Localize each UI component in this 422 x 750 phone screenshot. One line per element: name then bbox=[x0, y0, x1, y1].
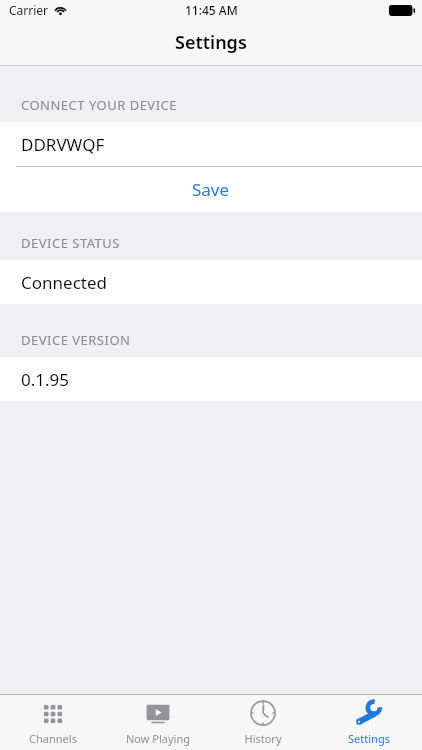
staticText: DEVICE VERSION bbox=[21, 331, 131, 349]
button[interactable]: Channels bbox=[0, 695, 105, 750]
staticText: Now Playing bbox=[126, 731, 190, 746]
staticText: Settings bbox=[175, 30, 247, 55]
staticText: Connected bbox=[21, 271, 107, 294]
staticText: Save bbox=[192, 178, 230, 201]
button[interactable]: Settings bbox=[316, 695, 422, 750]
staticText: Settings bbox=[348, 731, 390, 746]
staticText: CONNECT YOUR DEVICE bbox=[21, 96, 178, 114]
staticText: Channels bbox=[29, 731, 77, 746]
button[interactable]: DDRVWQF bbox=[0, 122, 422, 166]
staticText: History bbox=[244, 731, 282, 746]
button[interactable]: Connected bbox=[0, 260, 422, 304]
staticText: 11:45 AM bbox=[185, 2, 238, 18]
button[interactable]: Now Playing bbox=[105, 695, 210, 750]
staticText: DEVICE STATUS bbox=[21, 234, 120, 252]
staticText: Carrier bbox=[9, 2, 49, 18]
button[interactable]: History bbox=[210, 695, 316, 750]
staticText: DDRVWQF bbox=[21, 133, 105, 156]
staticText: 0.1.95 bbox=[21, 368, 70, 391]
button[interactable]: Save bbox=[0, 167, 422, 212]
button[interactable]: 0.1.95 bbox=[0, 357, 422, 401]
